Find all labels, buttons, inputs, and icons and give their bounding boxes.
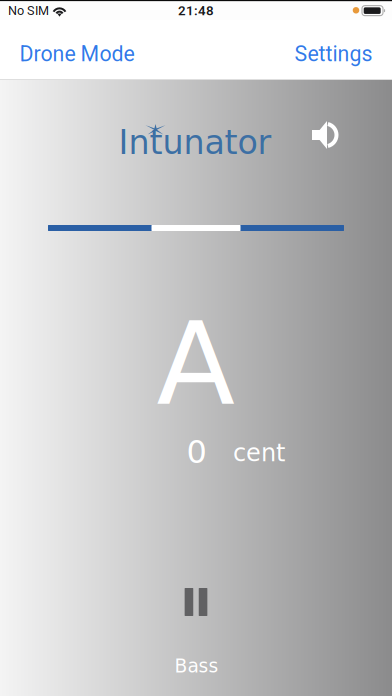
staticText: A [156, 297, 234, 430]
staticText: Bass [174, 655, 218, 677]
staticText: Drone Mode [19, 41, 134, 66]
button[interactable]: Drone Mode [0, 26, 148, 73]
button[interactable]: Settings [280, 26, 392, 73]
staticText: No SIM [8, 3, 49, 18]
button[interactable]: Sound on [312, 121, 341, 149]
staticText: 21:48 [178, 3, 214, 18]
staticText: Intunator [118, 123, 271, 162]
button[interactable]: Pause [185, 588, 207, 616]
staticText: 0 [186, 433, 206, 471]
staticText: cent [233, 439, 285, 467]
staticText: Settings [294, 41, 372, 66]
